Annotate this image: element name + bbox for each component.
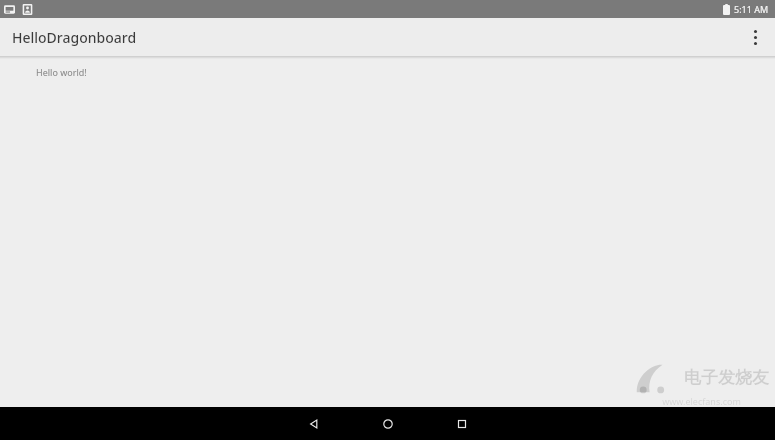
staticText: Hello world! (36, 66, 87, 78)
staticText: www.elecfans.com (662, 395, 741, 407)
button[interactable]: Home (371, 407, 404, 440)
staticText: 电子发烧友 (684, 367, 769, 388)
button[interactable]: More options (737, 19, 773, 55)
button[interactable]: Back (297, 407, 330, 440)
button[interactable]: Recent apps (445, 407, 478, 440)
staticText: 5:11 AM (734, 3, 769, 15)
staticText: HelloDragonboard (12, 28, 137, 47)
